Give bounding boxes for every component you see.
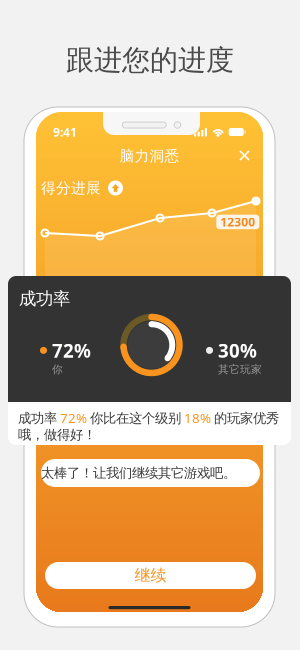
staticText: 12300 — [220, 214, 255, 230]
staticText: 72% — [52, 338, 91, 363]
staticText: 成功率 — [19, 288, 70, 309]
staticText: 跟进您的进度 — [66, 43, 234, 77]
button[interactable]: Close — [232, 143, 257, 168]
staticText: 成功率 72% 你比在这个级别 18% 的玩家优秀哦，做得好！ — [18, 409, 279, 443]
staticText: 9:41 — [53, 124, 77, 140]
staticText: 脑力洞悉 — [119, 147, 179, 165]
staticText: 得分进展 — [41, 179, 101, 197]
staticText: 太棒了！让我们继续其它游戏吧。 — [41, 465, 236, 481]
staticText: 其它玩家 — [218, 363, 262, 376]
staticText: 30% — [218, 338, 257, 363]
staticText: 你 — [52, 363, 63, 376]
staticText: 继续 — [134, 566, 166, 585]
button[interactable]: 继续 — [45, 562, 256, 589]
